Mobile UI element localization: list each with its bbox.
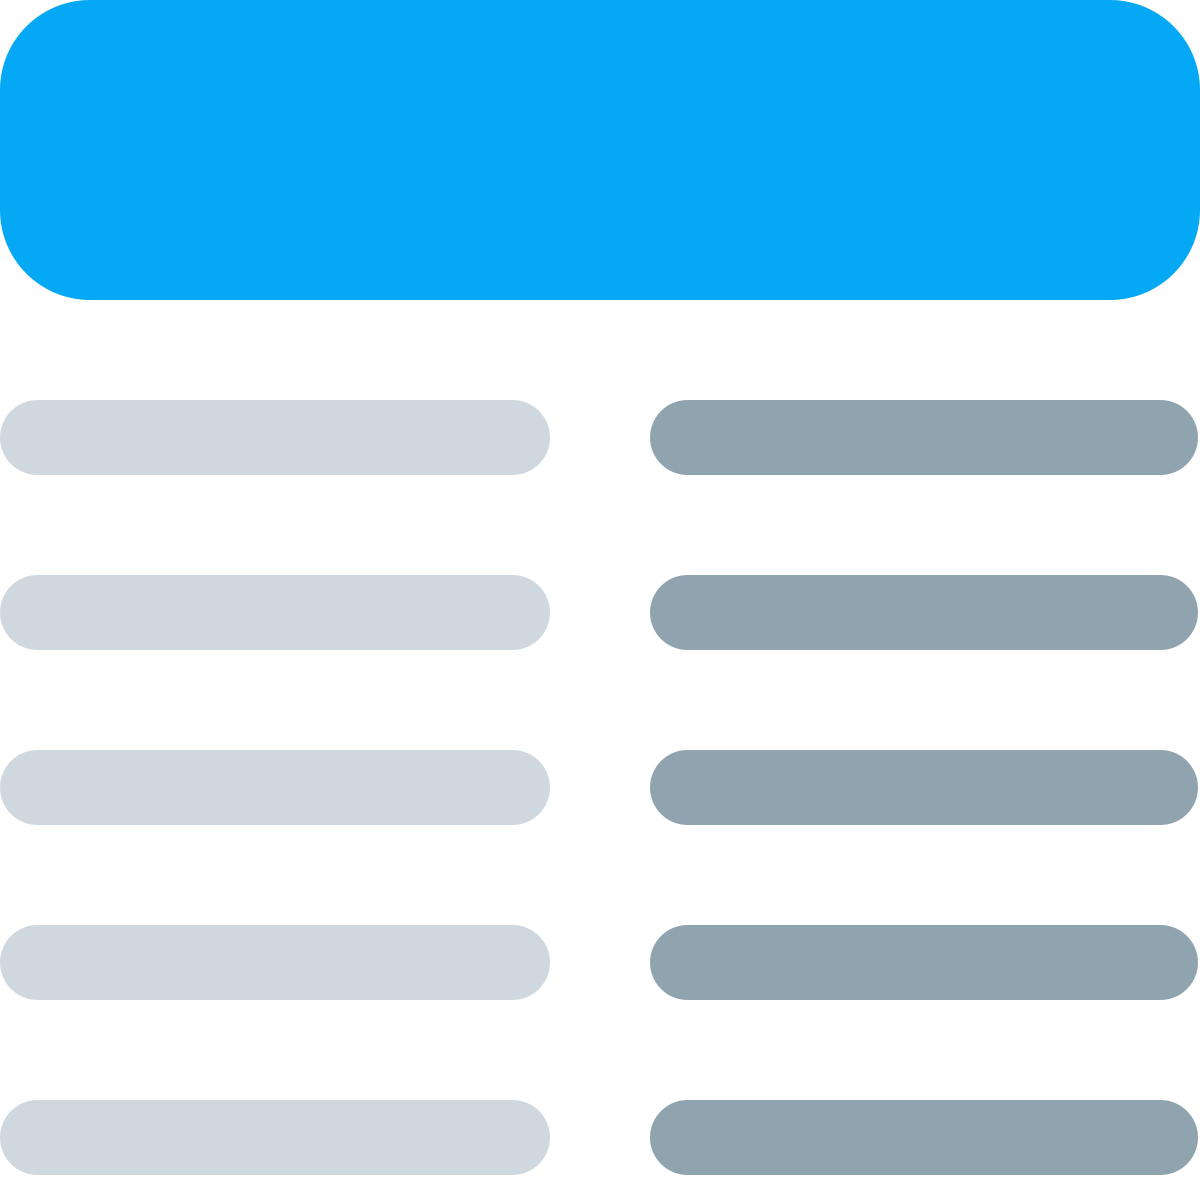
- button[interactable]: Loading row 5: [0, 1100, 1198, 1175]
- button[interactable]: Loading row 1: [0, 400, 1198, 475]
- button[interactable]: Loading row 3: [0, 750, 1198, 825]
- button[interactable]: Loading row 2: [0, 575, 1198, 650]
- button[interactable]: Loading row 4: [0, 925, 1198, 1000]
- button[interactable]: Featured card: [0, 0, 1200, 300]
